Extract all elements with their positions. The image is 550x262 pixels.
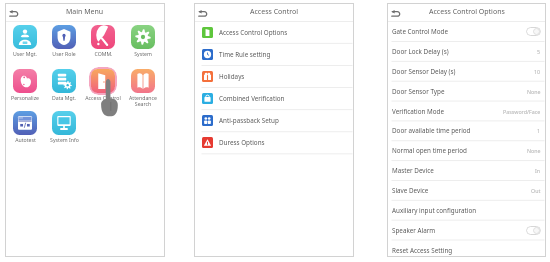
staticText: Personalize (11, 94, 39, 101)
staticText: Time Rule setting (219, 50, 271, 59)
button[interactable]: User Mgt. (6, 21, 44, 65)
button[interactable]: Access Control Options (194, 21, 354, 43)
button[interactable]: Door Sensor Type (387, 81, 546, 101)
button[interactable]: Access Control (84, 65, 122, 109)
button[interactable]: Normal open time period (387, 140, 546, 160)
staticText: Access Control Options (429, 7, 505, 17)
staticText: Door available time period (392, 126, 471, 135)
button[interactable]: Auxiliary input configuration (387, 200, 546, 220)
staticText: Access Control (250, 7, 298, 17)
staticText: Slave Device (392, 186, 429, 195)
button[interactable]: User Role (45, 21, 83, 65)
button[interactable]: Back (8, 9, 19, 18)
button[interactable]: Time Rule setting (194, 43, 354, 65)
staticText: Out (531, 187, 541, 194)
button[interactable]: Back (197, 9, 208, 18)
button[interactable]: Duress Options (194, 131, 354, 153)
staticText: None (527, 147, 541, 154)
staticText: 5 (537, 48, 541, 55)
staticText: Attendance Search (129, 94, 157, 107)
staticText: Data Mgt. (52, 94, 76, 101)
staticText: Auxiliary input configuration (392, 206, 477, 215)
button[interactable]: Reset Access Setting (387, 240, 546, 260)
button[interactable]: Master Device (387, 160, 546, 180)
staticText: Master Device (392, 166, 434, 175)
staticText: 10 (534, 68, 541, 75)
button[interactable]: Slave Device (387, 180, 546, 200)
staticText: Gate Control Mode (392, 27, 449, 36)
staticText: COMM. (94, 50, 113, 57)
button[interactable]: Gate Control Mode (387, 21, 546, 41)
button[interactable]: System Info (45, 107, 83, 151)
button[interactable]: COMM. (84, 21, 122, 65)
staticText: None (527, 88, 541, 95)
staticText: Reset Access Setting (392, 246, 453, 255)
staticText: Duress Options (219, 138, 265, 147)
button[interactable]: Combined Verification (194, 87, 354, 109)
staticText: Holidays (219, 72, 245, 81)
staticText: Access Control Options (219, 28, 288, 37)
staticText: Password/Face (503, 108, 541, 115)
staticText: Access Control (85, 94, 121, 101)
button[interactable]: Door available time period (387, 120, 546, 140)
staticText: Autotest (15, 136, 36, 143)
staticText: Speaker Alarm (392, 226, 436, 235)
staticText: User Mgt. (13, 50, 37, 57)
staticText: System Info (50, 136, 79, 143)
staticText: Combined Verification (219, 94, 285, 103)
button[interactable]: Data Mgt. (45, 65, 83, 109)
staticText: User Role (52, 50, 76, 57)
staticText: System (134, 50, 152, 57)
button[interactable]: Autotest (6, 107, 44, 151)
staticText: In (535, 167, 541, 174)
staticText: Main Menu (66, 7, 104, 17)
button[interactable]: Back (390, 9, 401, 18)
button[interactable]: Personalize (6, 65, 44, 109)
button[interactable]: System (124, 21, 162, 65)
button[interactable]: Holidays (194, 65, 354, 87)
button[interactable]: Speaker Alarm (387, 220, 546, 240)
staticText: Anti-passback Setup (219, 116, 279, 125)
button[interactable]: Anti-passback Setup (194, 109, 354, 131)
staticText: 1 (537, 127, 541, 134)
button[interactable]: Attendance Search (124, 65, 162, 109)
button[interactable]: Verification Mode (387, 101, 546, 121)
staticText: Normal open time period (392, 146, 467, 155)
staticText: Verification Mode (392, 107, 444, 116)
staticText: Door Lock Delay (s) (392, 47, 449, 56)
staticText: Door Sensor Type (392, 87, 445, 96)
staticText: Door Sensor Delay (s) (392, 67, 456, 76)
button[interactable]: Door Sensor Delay (s) (387, 61, 546, 81)
button[interactable]: Door Lock Delay (s) (387, 41, 546, 61)
